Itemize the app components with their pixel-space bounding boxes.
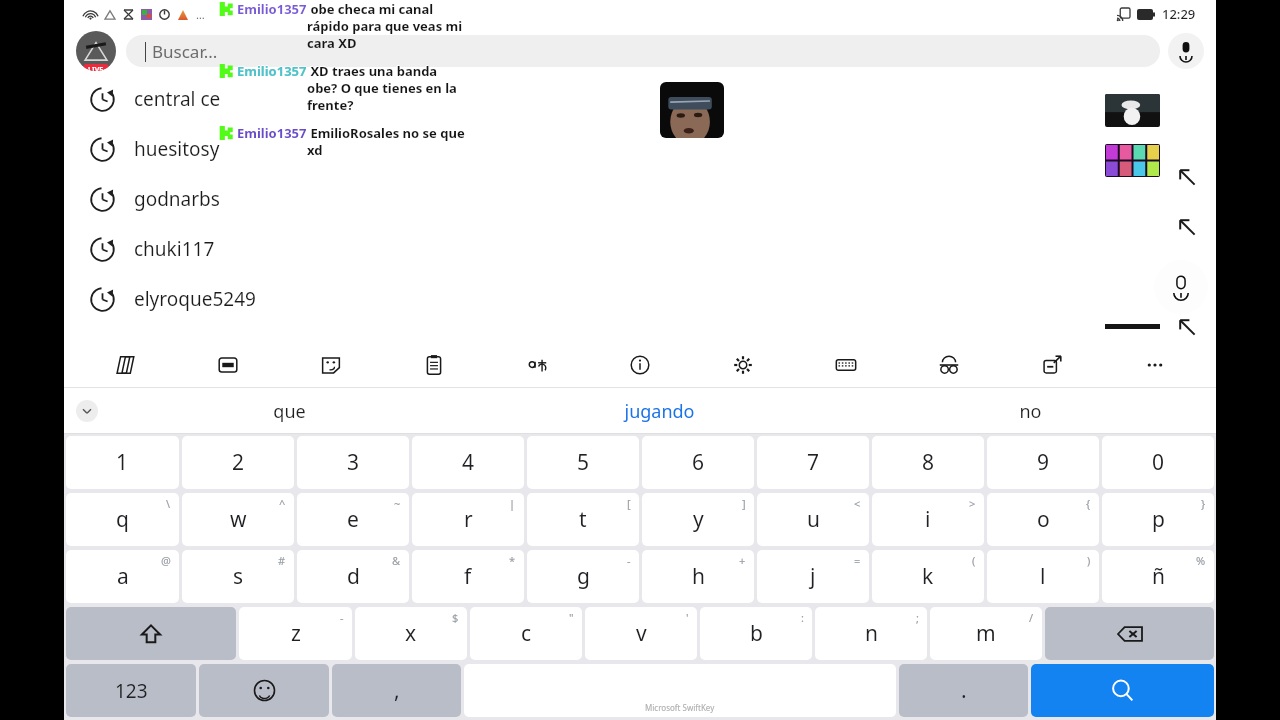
- button[interactable]: Ventana flotante: [1000, 341, 1103, 388]
- button[interactable]: Buscar...: [126, 35, 1160, 67]
- button[interactable]: Información: [588, 341, 691, 388]
- button[interactable]: o: [987, 493, 1099, 546]
- button[interactable]: [660, 82, 724, 138]
- button[interactable]: chuki117: [64, 224, 1216, 274]
- button[interactable]: Modo teclado: [794, 341, 897, 388]
- staticText: Emilio1357 obe checa mi canal rápido par…: [236, 0, 468, 35]
- staticText: LIVE: [88, 65, 104, 71]
- button[interactable]: g: [527, 550, 639, 603]
- button[interactable]: Traducir: [485, 341, 588, 388]
- button[interactable]: Buscar: [1031, 664, 1214, 717]
- button[interactable]: b: [700, 607, 812, 660]
- button[interactable]: 0: [1102, 436, 1214, 489]
- button[interactable]: Búsqueda por voz: [1168, 33, 1204, 69]
- staticText: que: [273, 399, 306, 424]
- button[interactable]: q: [66, 493, 179, 546]
- button[interactable]: r: [412, 493, 524, 546]
- staticText: n: [865, 619, 878, 648]
- button[interactable]: 3: [297, 436, 409, 489]
- staticText: [: [627, 496, 631, 511]
- button[interactable]: 4: [412, 436, 524, 489]
- button[interactable]: 5: [527, 436, 639, 489]
- button[interactable]: jugando: [474, 388, 845, 434]
- button[interactable]: Temas: [74, 341, 176, 388]
- staticText: .: [961, 676, 967, 705]
- button[interactable]: 1: [66, 436, 179, 489]
- button[interactable]: c: [470, 607, 582, 660]
- button[interactable]: m: [930, 607, 1042, 660]
- button[interactable]: Más: [1103, 341, 1206, 388]
- button[interactable]: i: [872, 493, 984, 546]
- button[interactable]: [1105, 94, 1160, 127]
- button[interactable]: [1105, 144, 1160, 177]
- staticText: *: [509, 553, 516, 568]
- button[interactable]: Ajustes: [691, 341, 794, 388]
- button[interactable]: v: [585, 607, 697, 660]
- staticText: ]: [742, 496, 746, 511]
- button[interactable]: ,: [332, 664, 461, 717]
- button[interactable]: Microsoft SwiftKey: [464, 664, 896, 717]
- button[interactable]: h: [642, 550, 754, 603]
- button[interactable]: que: [104, 388, 474, 434]
- button[interactable]: w: [182, 493, 294, 546]
- button[interactable]: Expandir sugerencias: [76, 400, 98, 422]
- button[interactable]: 2: [182, 436, 294, 489]
- button[interactable]: central ce: [64, 74, 1216, 124]
- button[interactable]: Insertar sugerencia: [1172, 212, 1202, 242]
- staticText: z: [291, 619, 301, 648]
- staticText: &: [392, 553, 401, 568]
- button[interactable]: k: [872, 550, 984, 603]
- button[interactable]: .: [899, 664, 1028, 717]
- staticText: t: [579, 505, 587, 534]
- staticText: Emilio1357 obe checa mi canal rápido par…: [237, 0, 469, 34]
- button[interactable]: x: [355, 607, 467, 660]
- button[interactable]: 123: [66, 664, 196, 717]
- button[interactable]: 6: [642, 436, 754, 489]
- staticText: d: [347, 562, 360, 591]
- button[interactable]: Stickers: [279, 341, 382, 388]
- button[interactable]: GIF: [176, 341, 279, 388]
- staticText: godnarbs: [134, 186, 220, 212]
- button[interactable]: Dictar por voz: [1154, 260, 1208, 314]
- button[interactable]: Portapapeles: [382, 341, 485, 388]
- button[interactable]: p: [1102, 493, 1214, 546]
- staticText: Emilio1357 EmilioRosales no se que xd: [236, 124, 468, 159]
- staticText: ': [686, 610, 689, 625]
- button[interactable]: Insertar sugerencia: [1172, 312, 1202, 342]
- button[interactable]: ñ: [1102, 550, 1214, 603]
- button[interactable]: 9: [987, 436, 1099, 489]
- button[interactable]: 7: [757, 436, 869, 489]
- button[interactable]: Insertar sugerencia: [1172, 262, 1202, 292]
- button[interactable]: e: [297, 493, 409, 546]
- button[interactable]: s: [182, 550, 294, 603]
- button[interactable]: u: [757, 493, 869, 546]
- button[interactable]: n: [815, 607, 927, 660]
- button[interactable]: z: [239, 607, 352, 660]
- button[interactable]: no: [845, 388, 1216, 434]
- button[interactable]: l: [987, 550, 1099, 603]
- button[interactable]: elyroque5249: [64, 274, 1216, 324]
- button[interactable]: Cuenta en vivo: [76, 31, 116, 71]
- button[interactable]: Mayúsculas: [66, 607, 236, 660]
- staticText: obe checa mi canal rápido para que veas …: [307, 0, 469, 52]
- button[interactable]: Insertar sugerencia: [1172, 162, 1202, 192]
- button[interactable]: y: [642, 493, 754, 546]
- button[interactable]: Borrar: [1045, 607, 1214, 660]
- staticText: XD traes una banda obe? O que tienes en …: [307, 62, 469, 114]
- button[interactable]: huesitosy: [64, 124, 1216, 174]
- button[interactable]: 8: [872, 436, 984, 489]
- staticText: $: [452, 610, 459, 625]
- button[interactable]: a: [66, 550, 179, 603]
- staticText: ": [569, 610, 574, 625]
- staticText: Emilio1357: [237, 124, 307, 142]
- staticText: 7: [807, 448, 820, 477]
- button[interactable]: Emoji: [199, 664, 329, 717]
- button[interactable]: f: [412, 550, 524, 603]
- button[interactable]: j: [757, 550, 869, 603]
- staticText: h: [692, 562, 705, 591]
- button[interactable]: Incógnito: [897, 341, 1000, 388]
- button[interactable]: godnarbs: [64, 174, 1216, 224]
- button[interactable]: t: [527, 493, 639, 546]
- button[interactable]: d: [297, 550, 409, 603]
- staticText: 123: [115, 678, 148, 704]
